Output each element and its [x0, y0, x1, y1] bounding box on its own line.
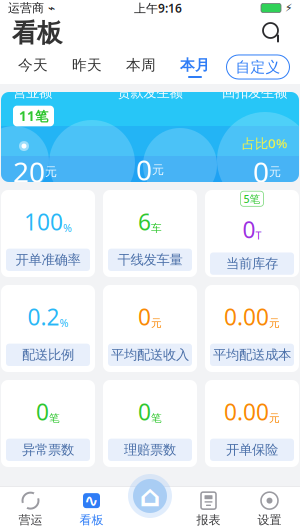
staticText: 设置 [257, 513, 281, 527]
button[interactable]: 0 [1, 380, 95, 467]
staticText: ⌁ [44, 1, 55, 15]
staticText: 0 [136, 151, 152, 188]
staticText: 0 [138, 397, 151, 427]
staticText: 0.00 [224, 302, 269, 332]
staticText: 开单保险 [226, 442, 278, 458]
staticText: % [59, 316, 68, 330]
staticText: 本月 [180, 56, 210, 74]
staticText: 昨天 [72, 56, 102, 74]
staticText: 元 [45, 164, 57, 179]
staticText: 今天 [18, 56, 48, 74]
button[interactable]: 报表 [178, 487, 239, 531]
button[interactable]: 今天 [6, 52, 60, 82]
button[interactable]: 0 [103, 380, 197, 467]
staticText: 自定义 [235, 58, 280, 76]
staticText: 配送比例 [22, 347, 74, 363]
button[interactable]: 设置 [239, 487, 300, 531]
button[interactable]: 本周 [114, 52, 168, 82]
staticText: 0 [138, 302, 151, 332]
staticText: 0.00 [224, 397, 269, 427]
staticText: 报表 [196, 513, 220, 527]
staticText: 异常票数 [22, 442, 74, 458]
button[interactable]: 5笔 [205, 190, 299, 277]
staticText: 运营商 [8, 1, 44, 15]
staticText: 笔 [49, 412, 60, 425]
staticText: 干线发车量 [117, 252, 182, 268]
button[interactable]: 搜索 [258, 18, 288, 48]
staticText: 元 [269, 317, 280, 330]
staticText: 开单准确率 [15, 252, 80, 268]
staticText: 笔 [151, 412, 162, 425]
button[interactable]: 6 [103, 190, 197, 277]
staticText: 理赔票数 [124, 442, 176, 458]
button[interactable]: 自定义 [226, 55, 289, 79]
staticText: ∿ [84, 491, 99, 510]
staticText: 上午9:16 [134, 0, 182, 16]
button[interactable]: 0.00 [205, 285, 299, 372]
staticText: 元 [151, 317, 162, 330]
button[interactable]: 0 [103, 285, 197, 372]
staticText: 货款发生额 [117, 84, 182, 101]
staticText: 元 [152, 162, 164, 177]
staticText: ⚡︎ [281, 2, 292, 14]
button[interactable]: 营运 [0, 487, 61, 531]
staticText: 营运 [18, 513, 42, 527]
staticText: 0 [242, 214, 255, 244]
staticText: 平均配送成本 [213, 347, 291, 363]
staticText: 看板 [12, 17, 62, 48]
staticText: 6 [138, 207, 151, 237]
staticText: % [63, 221, 72, 235]
button[interactable]: 100 [1, 190, 95, 277]
staticText: 0.2 [27, 302, 59, 332]
staticText: 100 [24, 207, 63, 237]
button[interactable]: 0.00 [205, 380, 299, 467]
staticText: 看板 [79, 513, 103, 527]
staticText: 车 [151, 222, 162, 235]
button[interactable]: 0.2 [1, 285, 95, 372]
staticText: 当前库存 [226, 255, 278, 272]
button[interactable]: 首页 [122, 468, 178, 524]
staticText: ⌂ [139, 479, 160, 513]
staticText: 0 [253, 153, 269, 190]
button[interactable]: 本月 [168, 52, 222, 82]
button[interactable]: ∿ [61, 487, 122, 531]
staticText: 11笔 [19, 107, 48, 125]
staticText: 回扣发生额 [222, 84, 287, 101]
staticText: 营业额 [13, 84, 52, 101]
staticText: 0 [36, 397, 49, 427]
staticText: 占比0% [242, 134, 287, 152]
staticText: 平均配送收入 [111, 347, 189, 363]
button[interactable]: 昨天 [60, 52, 114, 82]
staticText: 元 [269, 164, 281, 179]
staticText: 本周 [126, 56, 156, 74]
staticText: 20 [13, 153, 45, 190]
staticText: 元 [269, 412, 280, 425]
staticText: T [255, 228, 261, 242]
staticText: 5笔 [243, 192, 260, 206]
